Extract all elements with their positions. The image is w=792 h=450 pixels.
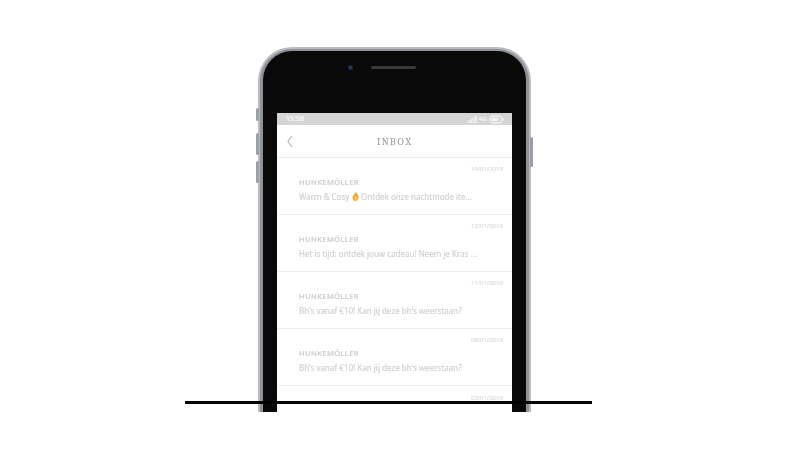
staticText: Ontdek onze nachtmode ite... [359,191,472,202]
staticText: 03/01/2019 [471,394,503,402]
staticText: HUNKEMÖLLER [299,234,359,244]
button[interactable]: 11/01/2019 [277,272,512,328]
staticText: 08/01/2019 [471,336,503,344]
button[interactable]: 12/01/2019 [277,215,512,271]
staticText: 14/01/2019 [471,165,503,173]
staticText: Bh's vanaf €10! Kan jij deze bh's weerst… [299,305,462,316]
staticText: HUNKEMÖLLER [299,177,359,187]
button[interactable]: 03/01/2019 [277,386,512,408]
staticText: INBOX [377,135,413,147]
staticText: HUNKEMÖLLER [299,291,359,301]
button[interactable]: 14/01/2019 [277,158,512,214]
staticText: 12/01/2019 [471,222,503,230]
staticText: 11/01/2019 [471,279,503,287]
staticText: Bh's vanaf €10! Kan jij deze bh's weerst… [299,362,462,373]
button[interactable]: Back [277,128,303,154]
staticText: 4G [479,115,487,123]
staticText: 15:58 [286,114,304,124]
staticText: Warm & Cosy [299,191,352,202]
staticText: HUNKEMÖLLER [299,348,359,358]
button[interactable]: 08/01/2019 [277,329,512,385]
staticText: Het is tijd: ontdek jouw cadeau! Neem je… [299,248,477,259]
